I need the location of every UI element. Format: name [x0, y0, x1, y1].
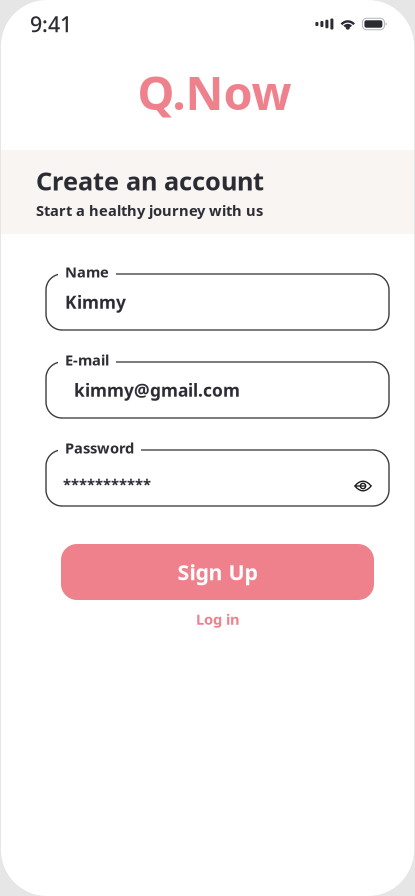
staticText: 9:41	[30, 10, 72, 38]
button[interactable]: Log in	[22, 604, 414, 634]
staticText: Name	[65, 262, 109, 281]
staticText: Password	[65, 438, 134, 457]
button[interactable]: Show password	[354, 479, 372, 493]
staticText: Sign Up	[177, 558, 257, 586]
staticText: Log in	[196, 609, 240, 629]
staticText: kimmy@gmail.com	[74, 378, 240, 401]
staticText: Start a healthy journey with us	[36, 201, 263, 220]
staticText: Create an account	[36, 164, 264, 197]
button[interactable]: Sign Up	[61, 544, 374, 600]
staticText: Kimmy	[65, 290, 126, 313]
staticText: ***********	[63, 474, 151, 494]
staticText: Q.Now	[137, 61, 291, 123]
staticText: E-mail	[65, 350, 109, 369]
